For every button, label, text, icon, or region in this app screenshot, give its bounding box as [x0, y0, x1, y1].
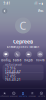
staticText: Изм.: [38, 9, 44, 13]
staticText: Сергеев: [13, 38, 33, 45]
staticText: Александрович Михаил: [6, 45, 39, 49]
staticText: вызов: [13, 58, 22, 62]
button[interactable]: вызов: [12, 51, 22, 62]
staticText: Клавиши: [29, 95, 36, 97]
button[interactable]: домашний: [2, 73, 43, 80]
button[interactable]: Избранное: [0, 89, 9, 99]
button[interactable]: Back: [2, 8, 7, 14]
button[interactable]: почта: [35, 51, 45, 62]
button[interactable]: сообщ.: [1, 51, 11, 62]
staticText: 9:41: [3, 2, 10, 5]
staticText: домашний: [5, 71, 20, 74]
button[interactable]: Недавние: [9, 89, 18, 99]
button[interactable]: Изм.: [38, 8, 44, 14]
staticText: мобильный: [5, 63, 22, 66]
button[interactable]: мобильный: [2, 65, 43, 73]
staticText: Недавние: [10, 95, 18, 97]
staticText: Автоотв.: [38, 95, 45, 97]
button[interactable]: Контакты: [18, 89, 28, 99]
staticText: C: [19, 18, 26, 33]
button[interactable]: Клавиши: [28, 89, 37, 99]
staticText: ıll ᯤ ▮: [34, 2, 42, 5]
staticText: +7 495 765-43-21: [5, 75, 21, 82]
staticText: Избранное: [0, 95, 9, 97]
staticText: сообщ.: [1, 58, 11, 62]
staticText: +7 916 123-45-67: [5, 67, 21, 74]
button[interactable]: Автоотв.: [37, 89, 46, 99]
staticText: Контакты: [19, 95, 27, 97]
staticText: почта: [36, 58, 44, 62]
button[interactable]: видео: [24, 51, 34, 62]
staticText: видео: [24, 58, 33, 62]
